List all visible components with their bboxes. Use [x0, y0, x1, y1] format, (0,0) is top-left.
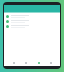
button[interactable]	[4, 19, 60, 24]
button[interactable]	[4, 14, 60, 19]
button[interactable]	[4, 24, 60, 29]
button[interactable]: Tab 2	[35, 60, 42, 65]
button[interactable]: Tab 1	[22, 60, 29, 65]
button[interactable]: Tab 0	[10, 60, 17, 65]
button[interactable]: Tab 3	[47, 60, 54, 65]
